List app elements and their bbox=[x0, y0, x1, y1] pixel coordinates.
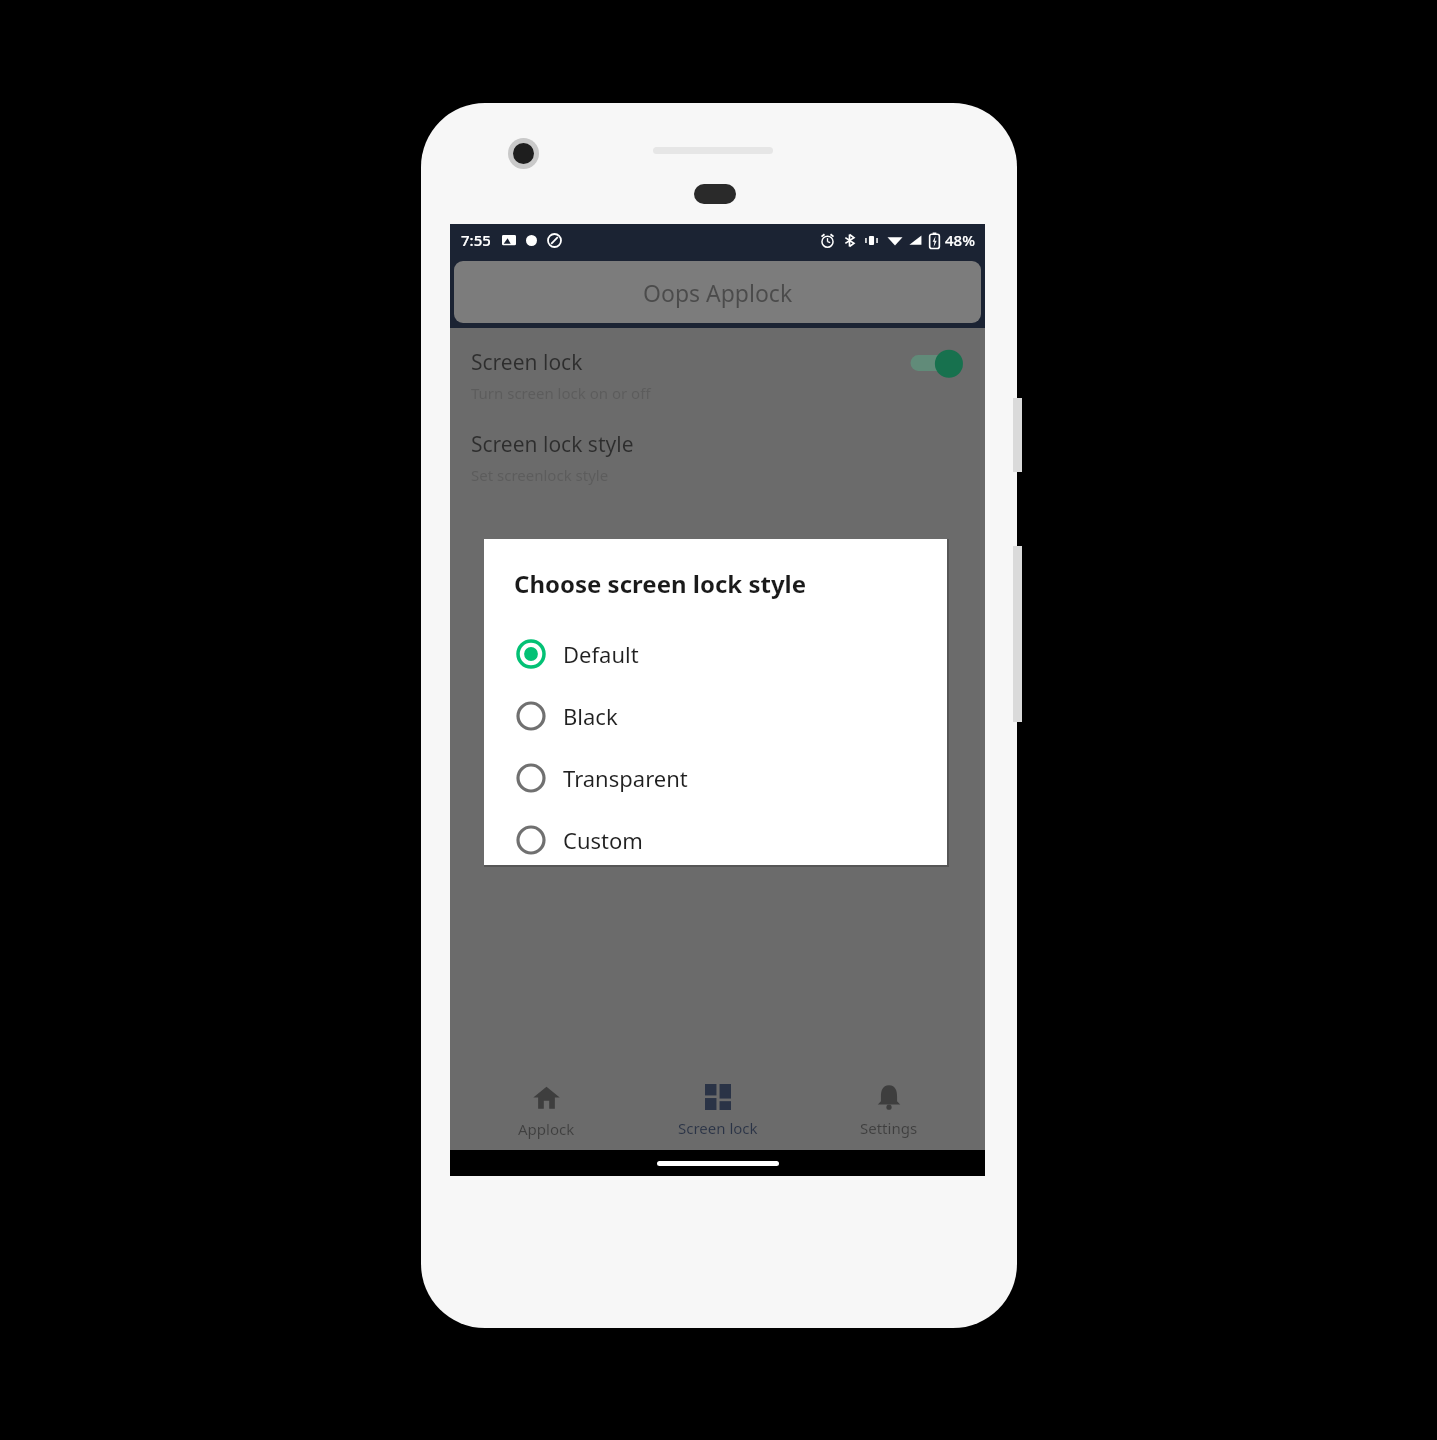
button[interactable]: Settings bbox=[814, 1072, 964, 1150]
staticText: Screen lock style bbox=[471, 430, 634, 459]
staticText: Turn screen lock on or off bbox=[471, 383, 651, 403]
button[interactable]: Toggle screen lock bbox=[908, 345, 970, 381]
staticText: Screen lock bbox=[678, 1118, 758, 1138]
button[interactable]: Custom bbox=[484, 811, 947, 869]
button[interactable]: Transparent bbox=[484, 749, 947, 807]
button[interactable]: Screen lock bbox=[450, 334, 985, 416]
staticText: Set screenlock style bbox=[471, 465, 609, 485]
staticText: Settings bbox=[860, 1118, 918, 1138]
button[interactable]: Black bbox=[484, 687, 947, 745]
button[interactable]: Screen lock style bbox=[450, 416, 985, 498]
staticText: Applock bbox=[518, 1119, 575, 1139]
button[interactable]: Screen lock bbox=[643, 1072, 793, 1150]
button[interactable]: Applock bbox=[471, 1072, 621, 1150]
staticText: Transparent bbox=[563, 763, 688, 793]
staticText: 48% bbox=[945, 230, 975, 250]
staticText: Black bbox=[563, 701, 618, 731]
staticText: Default bbox=[563, 639, 639, 669]
button[interactable]: Default bbox=[484, 625, 947, 683]
staticText: 7:55 bbox=[461, 230, 491, 250]
staticText: Screen lock bbox=[471, 348, 583, 377]
staticText: Choose screen lock style bbox=[514, 567, 807, 600]
staticText: Oops Applock bbox=[643, 277, 793, 308]
button[interactable]: Oops Applock bbox=[454, 261, 981, 323]
staticText: Custom bbox=[563, 825, 643, 855]
